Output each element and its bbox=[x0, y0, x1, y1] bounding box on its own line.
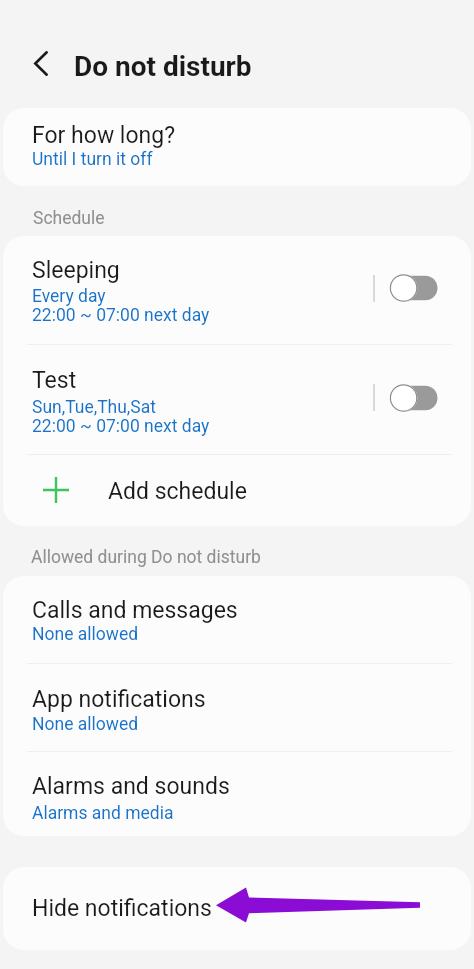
staticText: None allowed bbox=[32, 624, 139, 645]
button[interactable]: Back bbox=[19, 42, 62, 85]
staticText: Sleeping bbox=[32, 257, 120, 284]
staticText: Schedule bbox=[33, 208, 105, 229]
button[interactable]: Hide notifications bbox=[3, 867, 471, 950]
button[interactable]: Sleeping bbox=[3, 236, 471, 344]
button[interactable]: Calls and messages bbox=[3, 576, 471, 663]
staticText: Add schedule bbox=[108, 478, 247, 505]
staticText: Allowed during Do not disturb bbox=[31, 547, 261, 568]
staticText: 22:00 ~ 07:00 next day bbox=[32, 305, 210, 326]
button[interactable]: Add schedule bbox=[3, 454, 471, 526]
button[interactable]: App notifications bbox=[3, 663, 471, 752]
staticText: Every day bbox=[32, 286, 106, 307]
button[interactable]: Toggle schedule bbox=[390, 272, 438, 304]
staticText: Until I turn it off bbox=[32, 149, 153, 170]
button[interactable]: Test bbox=[3, 344, 471, 454]
staticText: App notifications bbox=[32, 686, 206, 713]
staticText: Test bbox=[32, 367, 77, 394]
staticText: None allowed bbox=[32, 714, 139, 735]
staticText: Calls and messages bbox=[32, 597, 238, 624]
staticText: Sun,Tue,Thu,Sat bbox=[32, 397, 156, 418]
staticText: Do not disturb bbox=[74, 50, 252, 83]
button[interactable]: For how long? Until I turn it off bbox=[3, 108, 471, 186]
staticText: Hide notifications bbox=[32, 895, 212, 922]
staticText: For how long? bbox=[32, 122, 176, 149]
staticText: 22:00 ~ 07:00 next day bbox=[32, 416, 210, 437]
staticText: Alarms and media bbox=[32, 803, 174, 824]
button[interactable]: Toggle schedule bbox=[390, 382, 438, 414]
button[interactable]: Alarms and sounds bbox=[3, 751, 471, 836]
staticText: Alarms and sounds bbox=[32, 773, 230, 800]
